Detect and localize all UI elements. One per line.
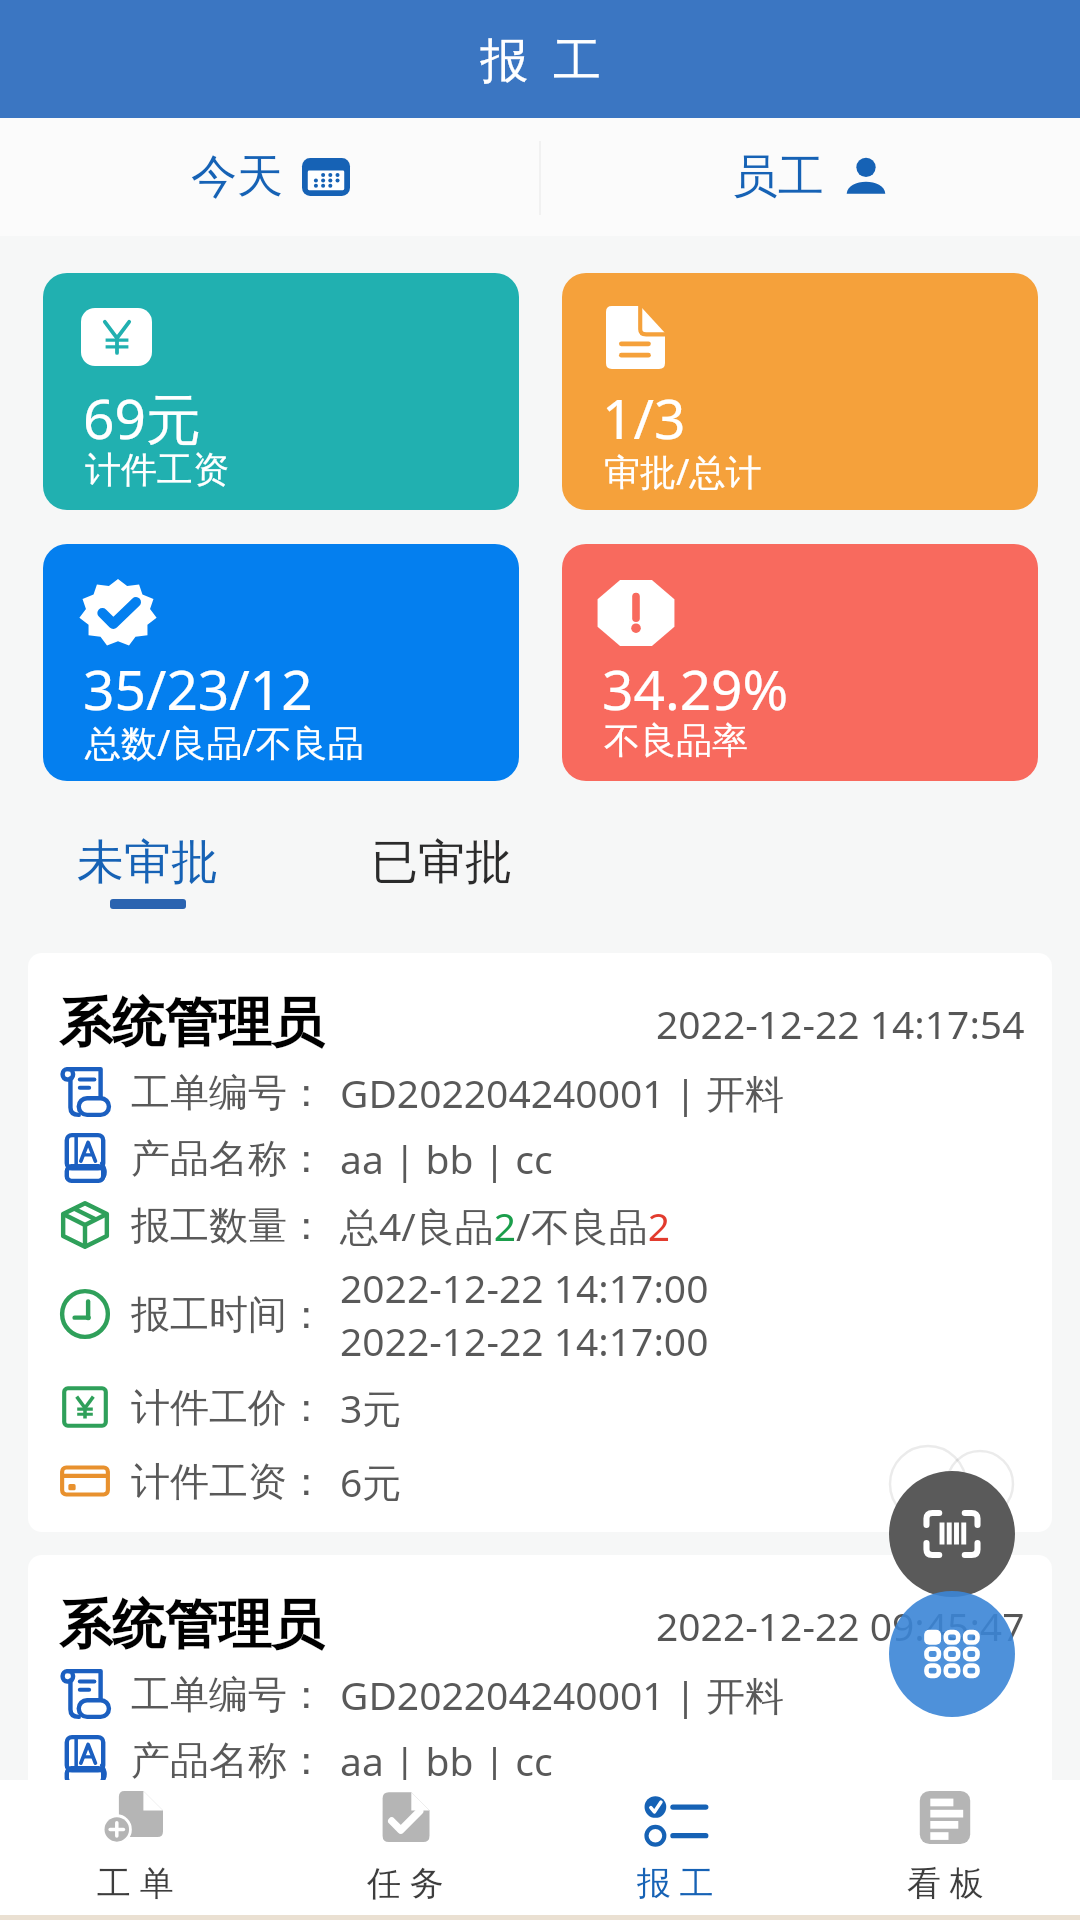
staticText: 总4/良品2/不良品2: [340, 1199, 670, 1252]
staticText: 工单编号：: [131, 1068, 326, 1117]
button[interactable]: 报 工: [540, 1780, 810, 1915]
staticText: 产品名称：: [131, 1134, 326, 1183]
button[interactable]: 34.29%: [562, 544, 1038, 781]
staticText: 2022-12-22 14:17:54: [656, 997, 1025, 1050]
button[interactable]: 未审批: [0, 800, 294, 930]
staticText: 系统管理员: [59, 990, 324, 1057]
staticText: 报工数量：: [131, 1201, 326, 1250]
staticText: 任 务: [367, 1859, 444, 1905]
staticText: GD202204240001 | 开料: [340, 1668, 785, 1721]
staticText: 1/3: [602, 380, 686, 455]
staticText: 审批/总计: [604, 447, 762, 496]
staticText: GD202204240001 | 开料: [340, 1066, 785, 1119]
staticText: 2022-12-22 14:17:00: [340, 1261, 709, 1314]
staticText: 未审批: [77, 833, 218, 892]
button[interactable]: 35/23/12: [43, 544, 519, 781]
staticText: 计件工资: [85, 447, 229, 492]
staticText: 35/23/12: [83, 651, 313, 726]
staticText: 工单编号：: [131, 1670, 326, 1719]
staticText: aa | bb | cc: [340, 1734, 553, 1787]
staticText: 报 工: [480, 26, 601, 92]
staticText: 总数/良品/不良品: [85, 718, 364, 767]
button[interactable]: 1/3: [562, 273, 1038, 510]
staticText: 2022-12-22 14:17:00: [340, 1314, 709, 1367]
button[interactable]: 今天: [0, 118, 540, 236]
staticText: 计件工价：: [131, 1383, 326, 1432]
staticText: 69元: [83, 380, 201, 455]
staticText: 员工: [732, 148, 824, 206]
staticText: 已审批: [371, 833, 512, 892]
staticText: 计件工资：: [131, 1457, 326, 1506]
staticText: 2022-12-22 09:45:47: [656, 1599, 1025, 1652]
button[interactable]: 看 板: [810, 1780, 1080, 1915]
staticText: 产品名称：: [131, 1736, 326, 1785]
staticText: 报工时间：: [131, 1290, 326, 1339]
button[interactable]: 69元: [43, 273, 519, 510]
button[interactable]: 系统管理员: [28, 1555, 1052, 1808]
staticText: 今天: [191, 148, 283, 206]
staticText: 报 工: [637, 1859, 714, 1905]
staticText: 系统管理员: [59, 1592, 324, 1659]
staticText: aa | bb | cc: [340, 1132, 553, 1185]
staticText: 看 板: [907, 1859, 984, 1905]
button[interactable]: 员工: [540, 118, 1080, 236]
button[interactable]: 任 务: [270, 1780, 540, 1915]
button[interactable]: 系统管理员: [28, 953, 1052, 1532]
staticText: 不良品率: [604, 718, 748, 763]
button[interactable]: Scan barcode: [889, 1471, 1015, 1597]
button[interactable]: 已审批: [294, 800, 588, 930]
staticText: 3元: [340, 1381, 402, 1434]
staticText: 34.29%: [602, 651, 789, 726]
button[interactable]: Number keypad: [889, 1591, 1015, 1717]
button[interactable]: 工 单: [0, 1780, 270, 1915]
staticText: 工 单: [97, 1859, 174, 1905]
staticText: 6元: [340, 1455, 402, 1508]
